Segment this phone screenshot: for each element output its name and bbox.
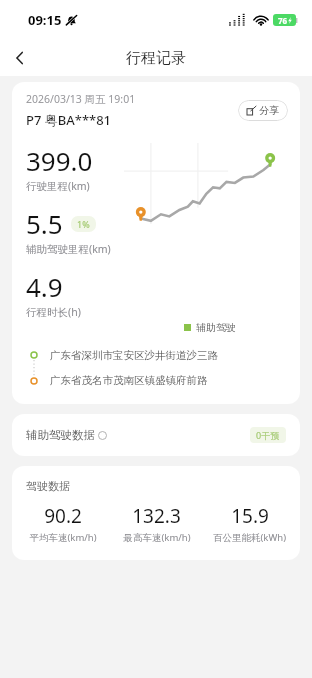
staticText: 百公里能耗(kWh) xyxy=(213,531,286,544)
staticText: 广东省深圳市宝安区沙井街道沙三路 xyxy=(50,349,218,362)
staticText: 399.0 xyxy=(26,143,93,178)
staticText: 132.3 xyxy=(132,503,181,529)
staticText: 广东省茂名市茂南区镇盛镇府前路 xyxy=(50,374,208,387)
staticText: 1% xyxy=(77,218,90,230)
staticText: 09:15 xyxy=(28,11,62,29)
staticText: 平均车速(km/h) xyxy=(29,531,97,544)
staticText: 辅助驾驶里程(km) xyxy=(26,242,111,256)
staticText: P7 粤BA***81 xyxy=(26,111,112,129)
staticText: 0干预 xyxy=(256,429,280,441)
staticText: 5.5 xyxy=(26,206,63,241)
staticText: 90.2 xyxy=(44,503,82,529)
staticText: 76 xyxy=(278,15,288,26)
staticText: 行驶里程(km) xyxy=(26,179,90,193)
staticText: 驾驶数据 xyxy=(26,479,70,493)
staticText: 辅助驾驶数据 xyxy=(26,428,95,442)
staticText: 4.9 xyxy=(26,269,63,304)
button[interactable]: 分享 xyxy=(238,100,288,121)
button[interactable]: 辅助驾驶数据 xyxy=(12,414,300,456)
button[interactable]: Back xyxy=(0,40,40,76)
staticText: 15.9 xyxy=(231,503,269,529)
staticText: 分享 xyxy=(259,104,279,117)
staticText: 2026/03/13 周五 19:01 xyxy=(26,92,136,106)
staticText: 行程记录 xyxy=(126,49,186,68)
staticText: 最高车速(km/h) xyxy=(123,531,191,544)
staticText: 辅助驾驶 xyxy=(196,321,236,334)
staticText: 行程时长(h) xyxy=(26,305,81,319)
